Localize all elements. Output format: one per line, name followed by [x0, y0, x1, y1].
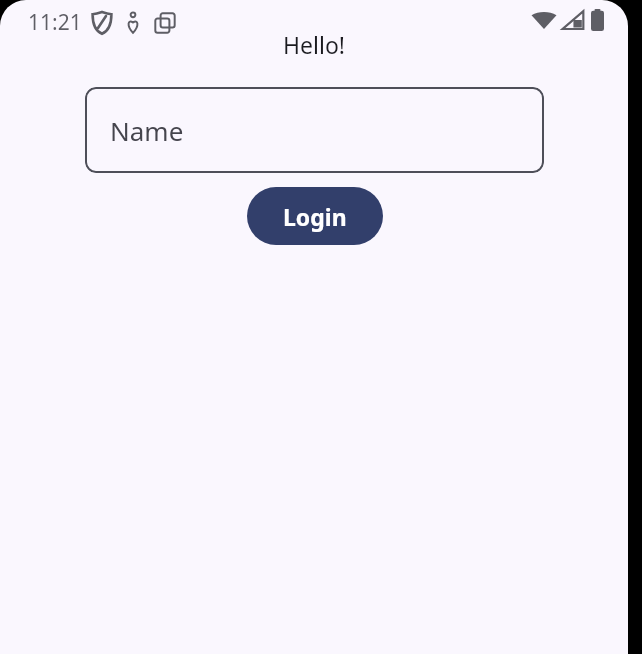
staticText: Login: [283, 201, 347, 232]
other: Secure: [92, 11, 112, 34]
button[interactable]: Name: [85, 87, 544, 173]
staticText: Name: [110, 113, 184, 148]
other: Wi-Fi: [531, 10, 557, 30]
other: Mobile signal: [562, 10, 584, 30]
staticText: 11:21: [28, 8, 82, 37]
staticText: Hello!: [283, 29, 345, 60]
button[interactable]: Login: [247, 187, 383, 245]
other: Recent apps: [154, 12, 176, 34]
other: Health: [126, 12, 140, 34]
other: Battery: [591, 9, 604, 31]
